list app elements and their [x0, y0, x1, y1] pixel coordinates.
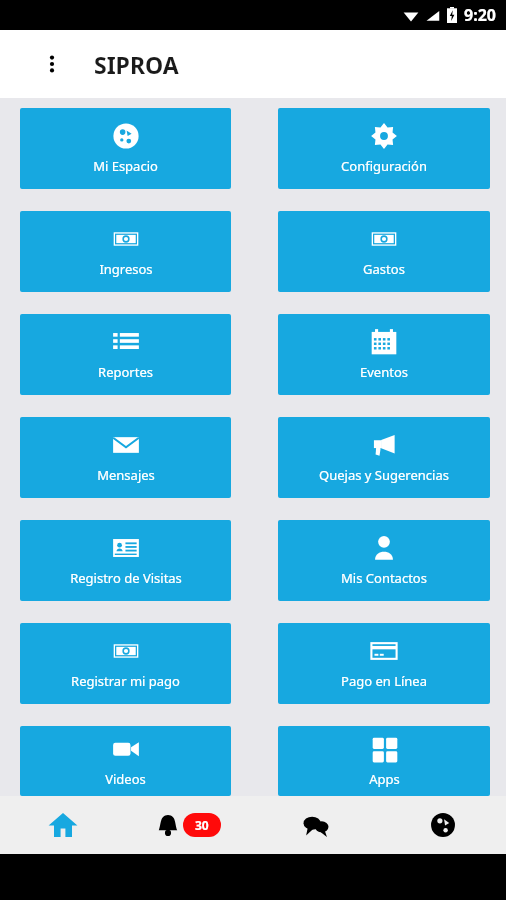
- button[interactable]: Ingresos: [20, 211, 231, 292]
- staticText: Apps: [369, 770, 400, 788]
- staticText: SIPROA: [94, 49, 179, 80]
- button[interactable]: Mensajes: [20, 417, 231, 498]
- staticText: Mi Espacio: [93, 157, 158, 175]
- button[interactable]: Home: [0, 796, 126, 854]
- button[interactable]: Messages: [252, 796, 379, 854]
- button[interactable]: Notifications, 30 new: [126, 796, 252, 854]
- button[interactable]: Mi Espacio: [20, 108, 231, 189]
- staticText: 9:20: [464, 4, 496, 26]
- staticText: Videos: [105, 770, 146, 788]
- button[interactable]: Videos: [20, 726, 231, 796]
- staticText: Registro de Visitas: [70, 569, 182, 587]
- staticText: Gastos: [363, 260, 405, 278]
- button[interactable]: Reportes: [20, 314, 231, 395]
- button[interactable]: Registro de Visitas: [20, 520, 231, 601]
- button[interactable]: Eventos: [278, 314, 490, 395]
- button[interactable]: Web: [379, 796, 506, 854]
- staticText: Ingresos: [99, 260, 153, 278]
- staticText: Quejas y Sugerencias: [319, 466, 449, 484]
- staticText: Reportes: [98, 363, 153, 381]
- button[interactable]: Quejas y Sugerencias: [278, 417, 490, 498]
- staticText: Mensajes: [97, 466, 155, 484]
- staticText: Configuración: [341, 157, 427, 175]
- staticText: 30: [195, 817, 209, 833]
- staticText: Registrar mi pago: [71, 672, 180, 690]
- button[interactable]: Registrar mi pago: [20, 623, 231, 704]
- staticText: Eventos: [360, 363, 408, 381]
- button[interactable]: Apps: [278, 726, 490, 796]
- button[interactable]: Pago en Línea: [278, 623, 490, 704]
- button[interactable]: Configuración: [278, 108, 490, 189]
- staticText: Mis Contactos: [341, 569, 427, 587]
- button[interactable]: Gastos: [278, 211, 490, 292]
- staticText: Pago en Línea: [341, 672, 427, 690]
- button[interactable]: Mis Contactos: [278, 520, 490, 601]
- button[interactable]: More options: [34, 46, 70, 82]
